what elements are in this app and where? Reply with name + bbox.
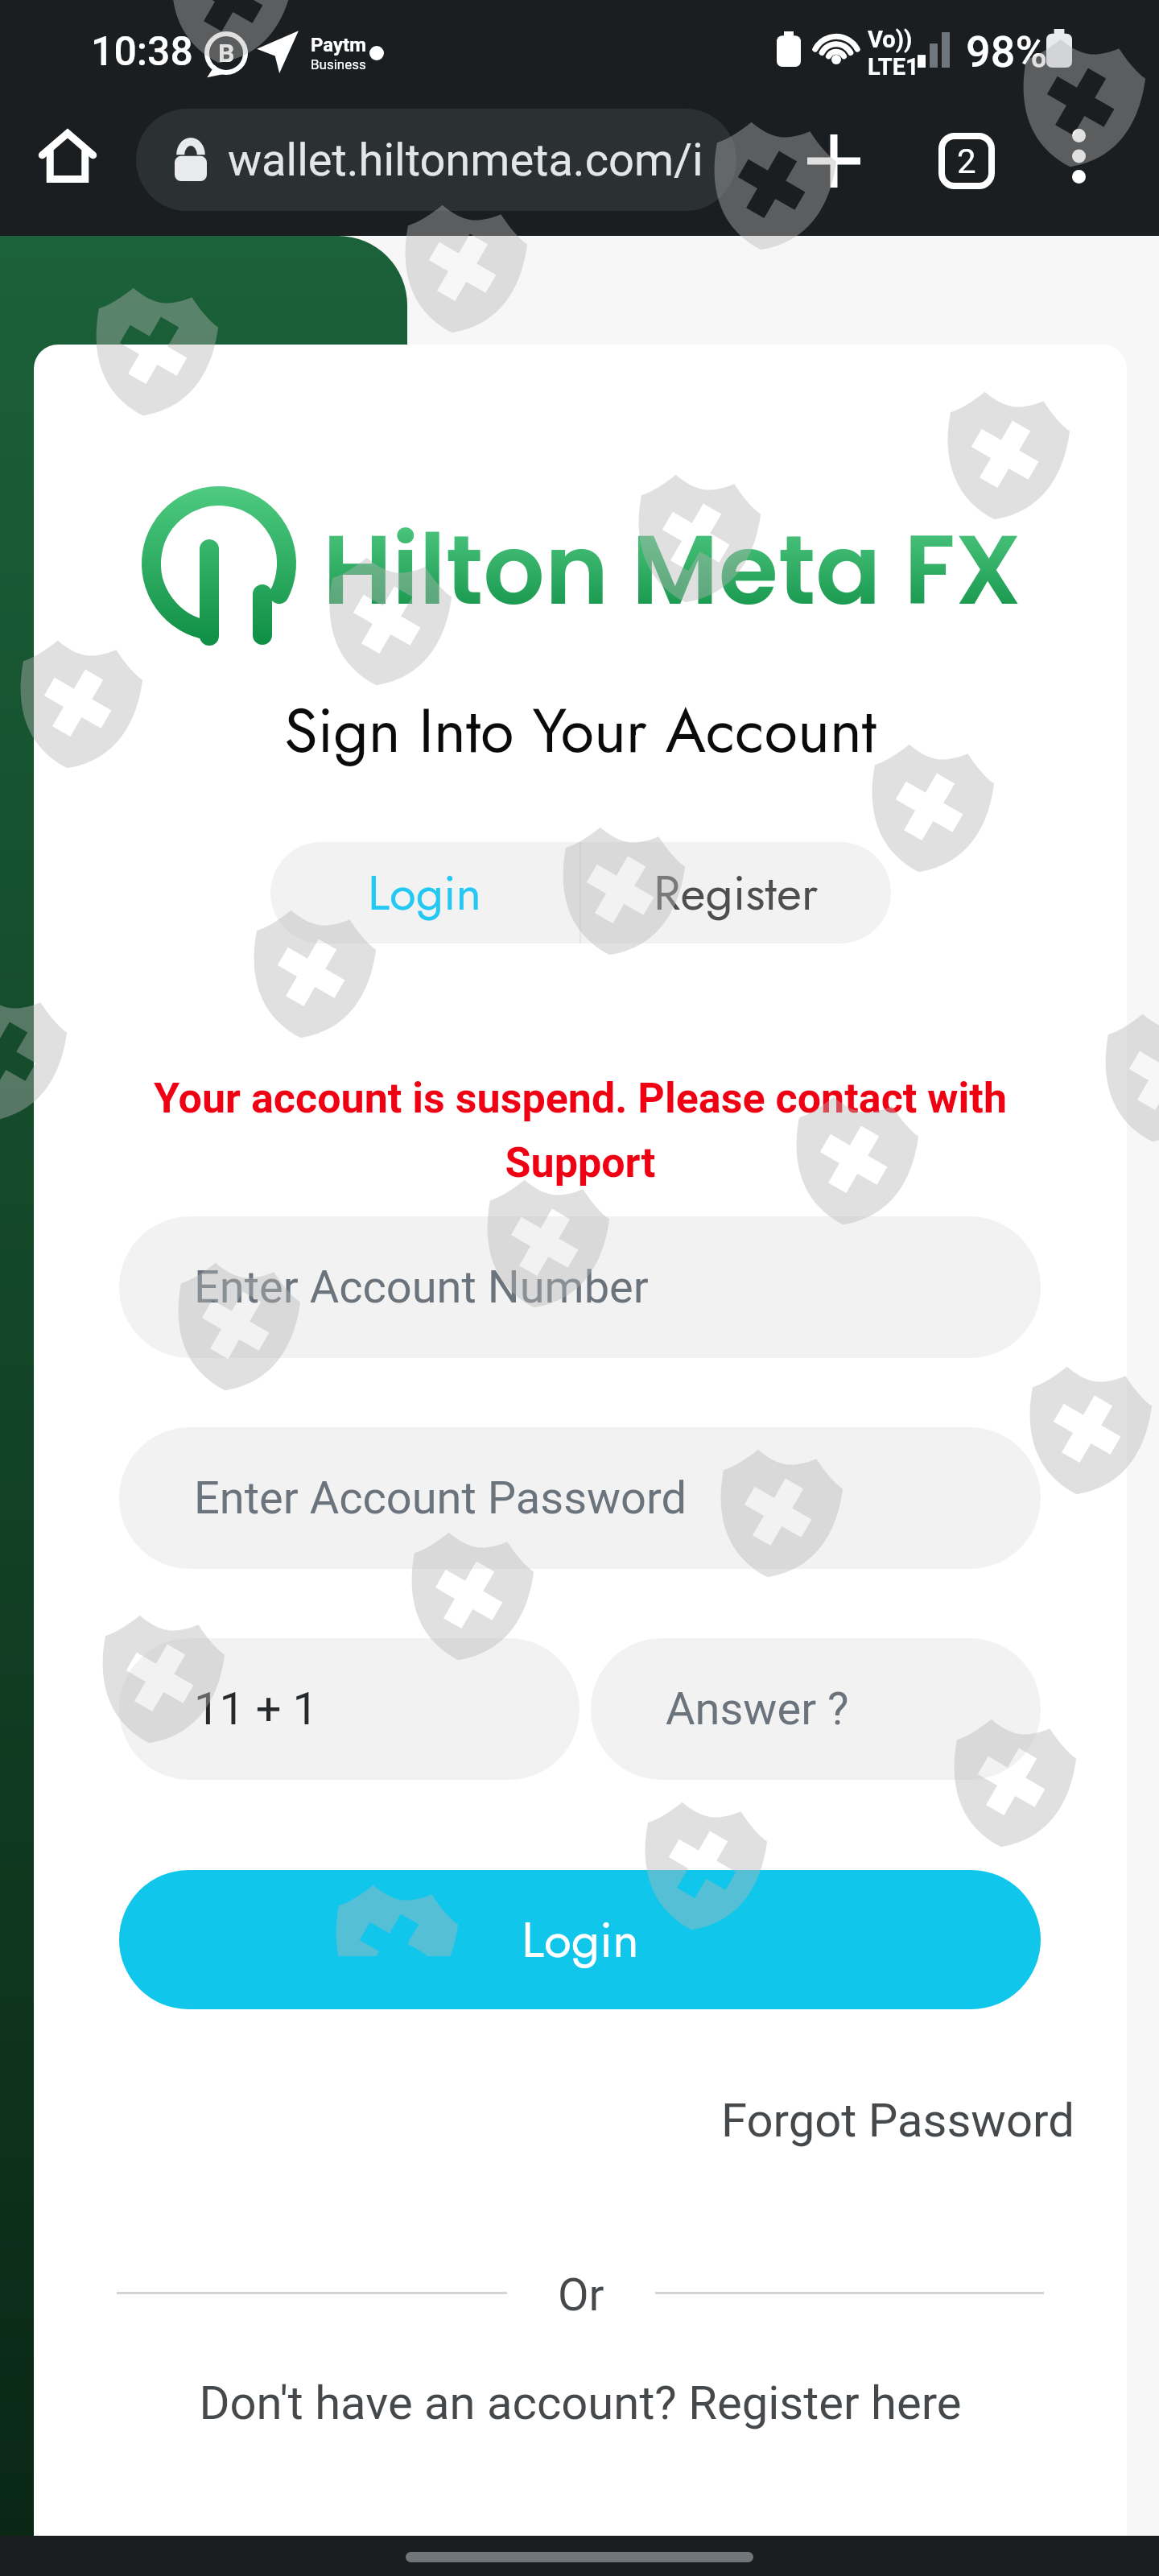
button[interactable]: 11 + 1 <box>119 1638 579 1780</box>
button[interactable]: Don't have an account? Register here <box>34 2376 1127 2430</box>
staticText: Answer ? <box>666 1682 849 1736</box>
staticText: Sign Into Your Account <box>34 687 1127 775</box>
staticText: B <box>218 38 235 68</box>
button[interactable]: Answer ? <box>591 1638 1041 1780</box>
staticText: Enter Account Number <box>194 1261 649 1314</box>
staticText: Hilton Meta FX <box>323 502 1022 638</box>
button[interactable]: Tabs <box>925 119 1008 203</box>
staticText: Login <box>522 1904 639 1976</box>
button[interactable]: Forgot Password <box>721 2093 1074 2148</box>
button[interactable]: More options <box>1041 119 1116 193</box>
staticText: Register <box>654 858 819 928</box>
staticText: wallet.hiltonmeta.com/i <box>228 134 703 187</box>
button[interactable]: Enter Account Password <box>119 1427 1041 1569</box>
staticText: 10:38 <box>91 28 193 76</box>
staticText: Enter Account Password <box>194 1472 687 1525</box>
staticText: Your account is suspend. Please contact … <box>130 1074 1030 1187</box>
staticText: Or <box>558 2268 604 2317</box>
staticText: 98% <box>966 27 1048 77</box>
button[interactable]: Home <box>31 119 105 193</box>
button[interactable]: wallet.hiltonmeta.com/i <box>136 109 736 211</box>
button[interactable]: Login <box>119 1870 1041 2009</box>
staticText: LTE1 <box>868 53 919 80</box>
staticText: Paytm <box>311 34 366 56</box>
button[interactable]: Enter Account Number <box>119 1216 1041 1358</box>
button[interactable]: New tab <box>792 119 876 203</box>
button[interactable]: Login <box>270 842 579 943</box>
button[interactable]: Register <box>581 842 891 943</box>
staticText: 11 + 1 <box>194 1682 318 1736</box>
staticText: Business <box>311 56 366 72</box>
staticText: Vo)) <box>868 26 913 53</box>
staticText: Login <box>368 858 482 928</box>
staticText: 2 <box>957 142 976 181</box>
